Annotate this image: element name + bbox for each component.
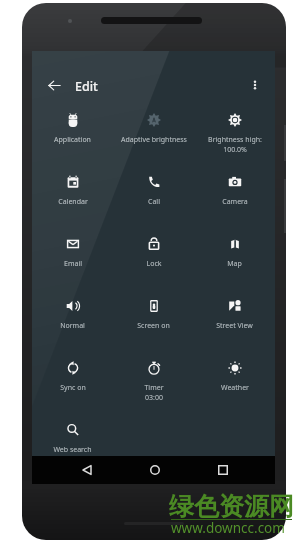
staticText: 100.0% <box>223 145 247 155</box>
staticText: Edit <box>75 78 98 95</box>
staticText: Screen on <box>137 321 170 331</box>
button[interactable]: Screen on <box>113 287 194 349</box>
button[interactable]: Application <box>32 101 113 163</box>
button[interactable]: Call <box>113 163 194 225</box>
staticText: Normal <box>60 321 85 331</box>
staticText: Camera <box>222 197 248 207</box>
staticText: Lock <box>146 259 162 269</box>
staticText: www.downcc.com <box>171 519 285 537</box>
button[interactable]: Recent apps <box>207 456 239 484</box>
button[interactable]: Brightness high: <box>194 101 275 163</box>
staticText: Street View <box>216 321 253 331</box>
button[interactable]: Camera <box>194 163 275 225</box>
button[interactable]: Sync on <box>32 349 113 411</box>
button[interactable]: Lock <box>113 225 194 287</box>
staticText: Email <box>64 259 82 269</box>
button[interactable]: Email <box>32 225 113 287</box>
staticText: 03:00 <box>145 393 163 403</box>
button[interactable]: Map <box>194 225 275 287</box>
button[interactable]: Adaptive brightness <box>113 101 194 163</box>
button[interactable]: Normal <box>32 287 113 349</box>
staticText: 绿色资源网 <box>169 491 294 522</box>
staticText: Sync on <box>60 383 86 393</box>
button[interactable]: Street View <box>194 287 275 349</box>
button[interactable]: Timer <box>113 349 194 411</box>
staticText: Weather <box>221 383 249 393</box>
staticText: Call <box>148 197 160 207</box>
button[interactable]: Back <box>71 456 103 484</box>
button[interactable]: Weather <box>194 349 275 411</box>
staticText: Map <box>227 259 242 269</box>
button[interactable]: Calendar <box>32 163 113 225</box>
button[interactable]: Home <box>139 456 171 484</box>
staticText: Timer <box>144 383 164 393</box>
staticText: Brightness high: <box>208 135 262 145</box>
button[interactable]: More options <box>239 69 271 101</box>
staticText: Adaptive brightness <box>121 135 187 145</box>
staticText: Application <box>54 135 91 145</box>
button[interactable]: Web search <box>32 411 113 473</box>
staticText: Calendar <box>58 197 88 207</box>
button[interactable]: Navigate up <box>36 67 72 103</box>
staticText: Web search <box>53 445 92 455</box>
